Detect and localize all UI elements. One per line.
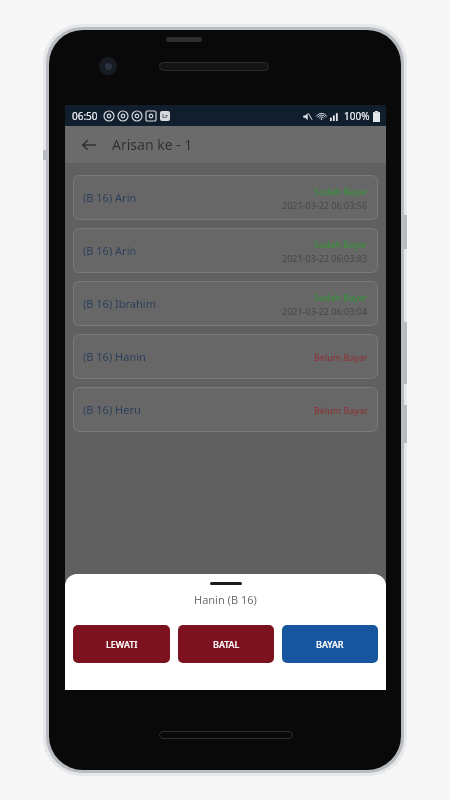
staticText: (B 16) Arin [83, 190, 137, 205]
staticText: BATAL [213, 638, 240, 650]
button[interactable]: (B 16) Arin [73, 175, 378, 220]
staticText: 2021-03-22 06:03:04 [282, 305, 368, 317]
staticText: Hanin (B 16) [194, 592, 257, 607]
staticText: (B 16) Heru [83, 402, 141, 417]
staticText: Sudah Bayar [314, 291, 368, 303]
button[interactable]: (B 16) Ibrahim [73, 281, 378, 326]
staticText: 06:50 [72, 109, 98, 123]
staticText: 100% [344, 109, 370, 123]
staticText: Sudah Bayar [314, 185, 368, 197]
staticText: Belum Bayar [314, 404, 368, 416]
staticText: Sudah Bayar [314, 238, 368, 250]
button[interactable]: (B 16) Arin [73, 228, 378, 273]
staticText: (B 16) Arin [83, 243, 137, 258]
staticText: 2021-03-22 06:03:83 [282, 252, 368, 264]
button[interactable]: (B 16) Hanin [73, 334, 378, 379]
staticText: Belum Bayar [314, 351, 368, 363]
staticText: (B 16) Ibrahim [83, 296, 156, 311]
button[interactable]: Back [75, 131, 103, 159]
button[interactable]: LEWATI [73, 625, 170, 663]
staticText: BAYAR [316, 638, 344, 650]
button[interactable]: (B 16) Heru [73, 387, 378, 432]
button[interactable]: BAYAR [282, 625, 378, 663]
staticText: Lr [162, 112, 169, 120]
staticText: (B 16) Hanin [83, 349, 146, 364]
staticText: Arisan ke - 1 [112, 135, 193, 154]
staticText: 2021-03-22 06:03:56 [282, 199, 368, 211]
button[interactable]: BATAL [178, 625, 274, 663]
staticText: LEWATI [106, 638, 138, 650]
